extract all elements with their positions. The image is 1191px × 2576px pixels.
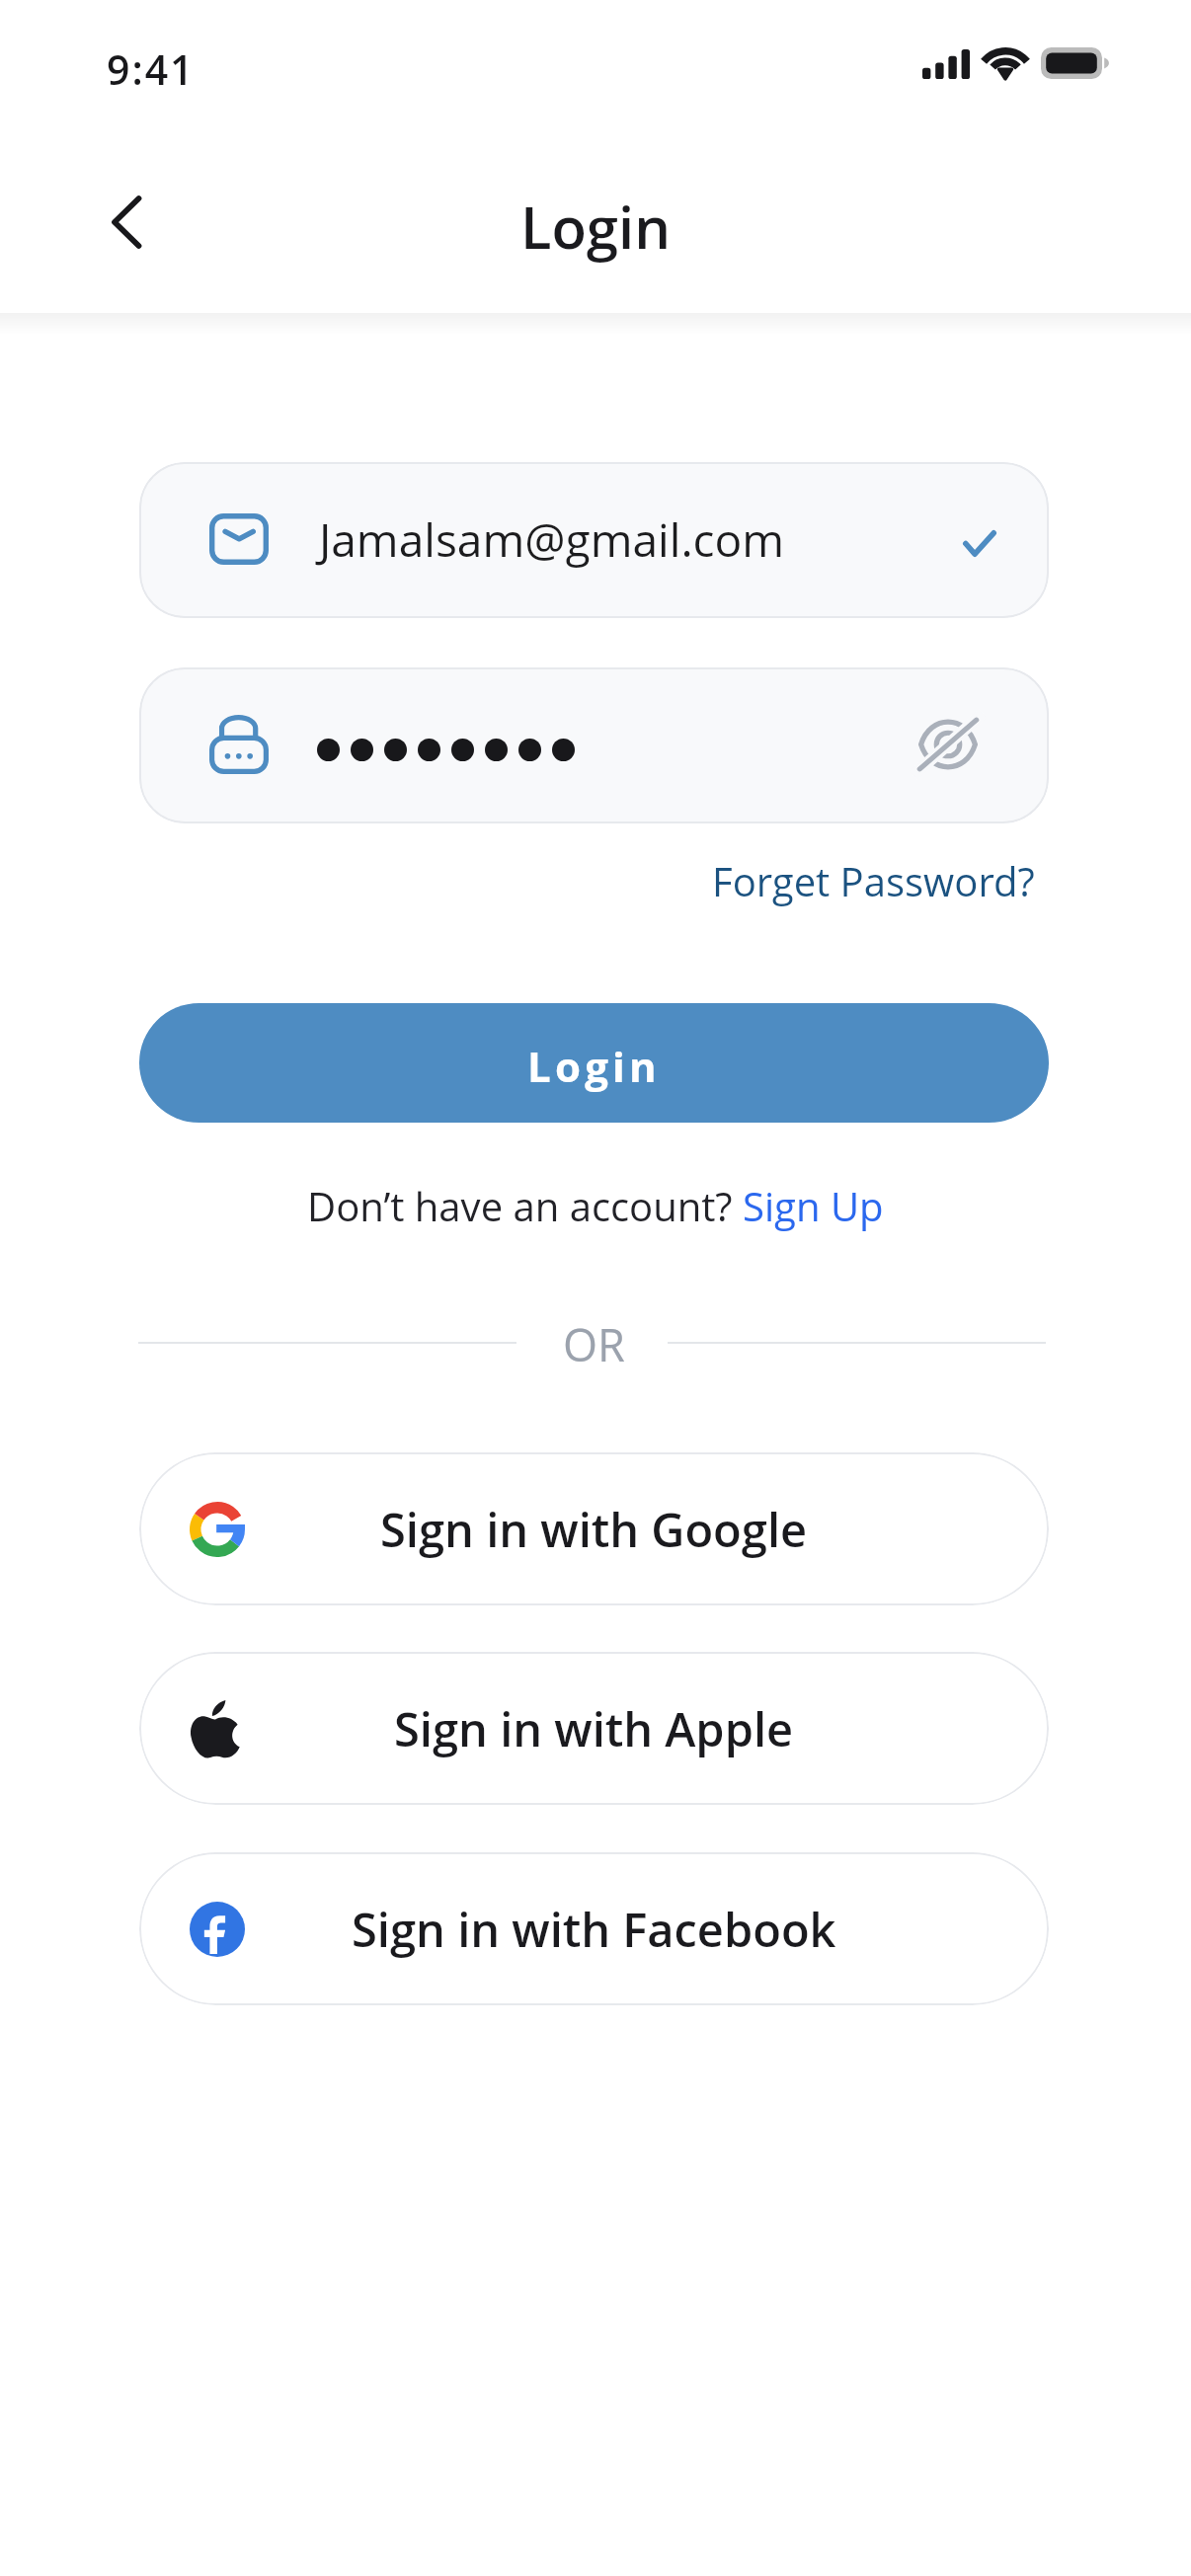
button[interactable]: Jamalsam@gmail.com (139, 462, 1049, 618)
staticText: Forget Password? (712, 854, 1035, 907)
button[interactable]: Sign in with Google (139, 1452, 1049, 1605)
button[interactable]: Show password (139, 667, 1049, 823)
staticText: Login (527, 1038, 661, 1094)
button[interactable]: Sign in with Facebook (139, 1852, 1049, 2005)
staticText: Sign in with Google (380, 1498, 808, 1561)
button[interactable]: Sign in with Apple (139, 1652, 1049, 1805)
staticText: OR (563, 1314, 625, 1374)
staticText: Sign Up (743, 1179, 884, 1232)
staticText: Sign in with Apple (394, 1697, 794, 1760)
button[interactable]: Back (79, 177, 174, 272)
staticText: Login (520, 188, 672, 266)
button[interactable]: Forget Password? (712, 854, 1035, 907)
staticText: Don’t have an account? (307, 1179, 743, 1232)
button[interactable]: Login (139, 1003, 1049, 1123)
staticText: 9:41 (107, 41, 196, 97)
button[interactable]: Show password (918, 719, 978, 770)
staticText: Sign in with Facebook (352, 1898, 836, 1961)
staticText: Jamalsam@gmail.com (319, 508, 785, 571)
button[interactable]: Sign Up (743, 1179, 884, 1232)
